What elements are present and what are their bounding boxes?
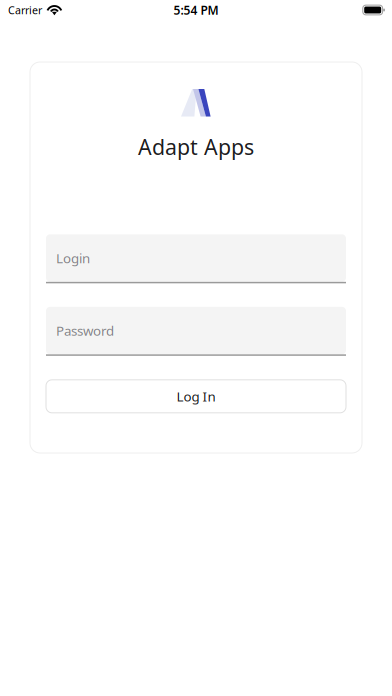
staticText: Log In — [176, 387, 215, 405]
staticText: Carrier — [8, 3, 42, 17]
staticText: 5:54 PM — [173, 2, 218, 18]
staticText: Adapt Apps — [138, 132, 254, 161]
button[interactable]: Log In — [46, 380, 346, 413]
button[interactable]: Login — [46, 234, 346, 283]
staticText: Login — [56, 249, 90, 267]
button[interactable]: Password — [46, 307, 346, 356]
staticText: Password — [56, 322, 114, 339]
